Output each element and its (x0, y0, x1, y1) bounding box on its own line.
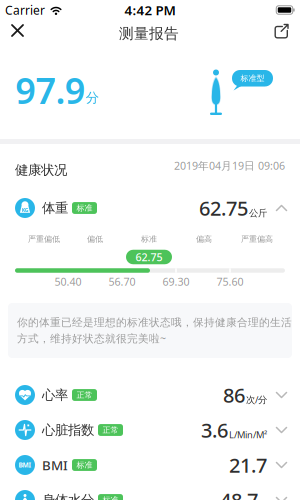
staticText: 48.7 (220, 487, 258, 500)
staticText: KG (21, 206, 28, 214)
staticText: 标准型 (240, 73, 264, 83)
staticText: 身体水分 (42, 492, 94, 500)
staticText: 62.75 (199, 195, 248, 221)
staticText: Carrier (5, 2, 45, 18)
staticText: 3.6 (201, 417, 228, 443)
button[interactable]: Share (274, 23, 290, 39)
button[interactable]: 心率 (0, 377, 300, 412)
staticText: 56.70 (108, 274, 135, 289)
staticText: 4:42 PM (124, 1, 175, 19)
staticText: 标准 (141, 234, 157, 244)
staticText: L/Min/M² (229, 428, 267, 441)
staticText: 方式，维持好状态就很完美啦~ (17, 331, 166, 345)
staticText: BMI (18, 461, 31, 469)
staticText: 标准 (102, 495, 118, 500)
staticText: 正常 (76, 390, 92, 400)
staticText: BMI (42, 456, 68, 474)
staticText: 健康状况 (15, 162, 67, 178)
staticText: 偏低 (87, 234, 103, 244)
staticText: 69.30 (162, 274, 189, 289)
staticText: 次/分 (246, 393, 267, 406)
staticText: 正常 (102, 425, 118, 435)
staticText: 2019年04月19日 09:06 (174, 158, 285, 173)
button[interactable]: KG (0, 188, 300, 228)
staticText: 心脏指数 (42, 422, 94, 438)
button[interactable]: 心脏指数 (0, 412, 300, 447)
staticText: 分 (86, 89, 99, 106)
staticText: 心率 (42, 387, 68, 403)
staticText: 公斤 (249, 207, 267, 219)
staticText: 标准 (76, 460, 92, 470)
staticText: 标准 (76, 203, 92, 213)
staticText: 体重 (42, 200, 68, 216)
staticText: 严重偏低 (28, 234, 60, 244)
staticText: 偏高 (196, 234, 212, 244)
staticText: 50.40 (54, 274, 81, 289)
staticText: 21.7 (229, 452, 267, 478)
button[interactable]: 身体水分 (0, 482, 300, 500)
staticText: 62.75 (135, 250, 162, 264)
staticText: 97.9 (15, 66, 86, 114)
staticText: 86 (223, 382, 245, 408)
button[interactable]: Close (8, 21, 27, 40)
staticText: 测量报告 (119, 24, 179, 42)
button[interactable]: BMI (0, 447, 300, 482)
staticText: 75.60 (216, 274, 243, 289)
staticText: 你的体重已经是理想的标准状态哦，保持健康合理的生活 (17, 316, 292, 329)
staticText: 严重偏高 (241, 234, 273, 244)
